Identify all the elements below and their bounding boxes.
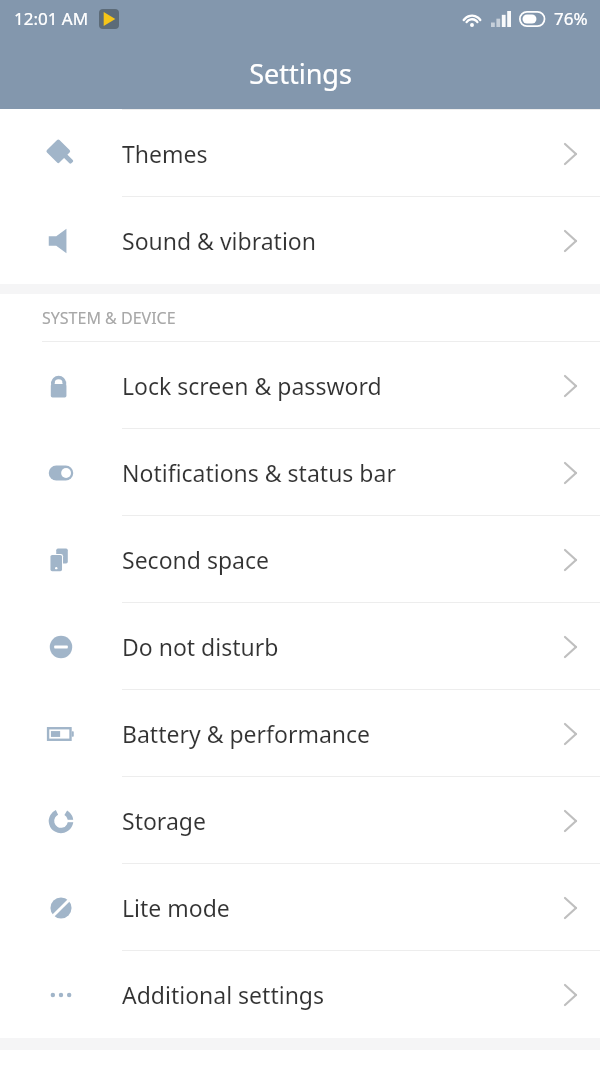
staticText: Storage	[122, 805, 540, 836]
staticText: Settings	[249, 55, 352, 92]
button[interactable]: Do not disturb	[0, 603, 600, 690]
staticText: 76%	[554, 7, 588, 30]
button[interactable]: Storage	[0, 777, 600, 864]
staticText: Second space	[122, 544, 540, 575]
staticText: Sound & vibration	[122, 225, 540, 256]
staticText: Themes	[122, 138, 540, 169]
staticText: Additional settings	[122, 979, 540, 1010]
staticText: Lock screen & password	[122, 370, 540, 401]
button[interactable]: Notifications & status bar	[0, 429, 600, 516]
button[interactable]: Themes	[0, 110, 600, 197]
staticText: Lite mode	[122, 892, 540, 923]
staticText: SYSTEM & DEVICE	[42, 307, 176, 329]
button[interactable]: Sound & vibration	[0, 197, 600, 284]
staticText: Notifications & status bar	[122, 457, 540, 488]
staticText: Battery & performance	[122, 718, 540, 749]
staticText: Do not disturb	[122, 631, 540, 662]
button[interactable]: Second space	[0, 516, 600, 603]
button[interactable]: Additional settings	[0, 951, 600, 1038]
button[interactable]: Lite mode	[0, 864, 600, 951]
button[interactable]: Battery & performance	[0, 690, 600, 777]
button[interactable]: Lock screen & password	[0, 342, 600, 429]
staticText: 12:01 AM	[14, 7, 89, 30]
